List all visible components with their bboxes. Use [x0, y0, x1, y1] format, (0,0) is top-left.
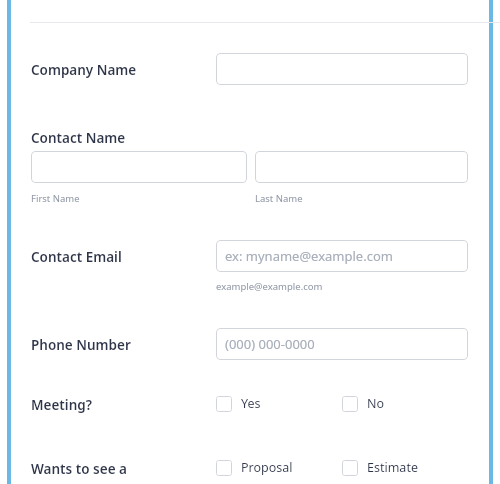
staticText: ex: myname@example.com	[225, 247, 393, 265]
button[interactable]: (000) 000-0000	[216, 328, 468, 360]
staticText: Wants to see a	[31, 460, 216, 478]
button[interactable]: No	[342, 395, 385, 412]
staticText: Proposal	[241, 459, 293, 476]
button[interactable]	[31, 151, 247, 183]
button[interactable]: Yes	[216, 395, 261, 412]
button[interactable]: ex: myname@example.com	[216, 240, 468, 272]
button[interactable]: Estimate	[342, 459, 418, 476]
staticText: Phone Number	[31, 336, 216, 354]
staticText: First Name	[31, 192, 80, 205]
staticText: Contact Name	[31, 129, 216, 147]
staticText: Estimate	[367, 459, 418, 476]
staticText: Yes	[241, 395, 261, 412]
staticText: Company Name	[31, 61, 216, 79]
staticText: Meeting?	[31, 396, 216, 414]
staticText: Contact Email	[31, 248, 216, 266]
staticText: Last Name	[255, 192, 303, 205]
staticText: No	[367, 395, 385, 412]
button[interactable]: Proposal	[216, 459, 293, 476]
button[interactable]	[255, 151, 468, 183]
staticText: example@example.com	[216, 280, 323, 293]
button[interactable]	[216, 53, 468, 85]
staticText: (000) 000-0000	[225, 335, 315, 353]
